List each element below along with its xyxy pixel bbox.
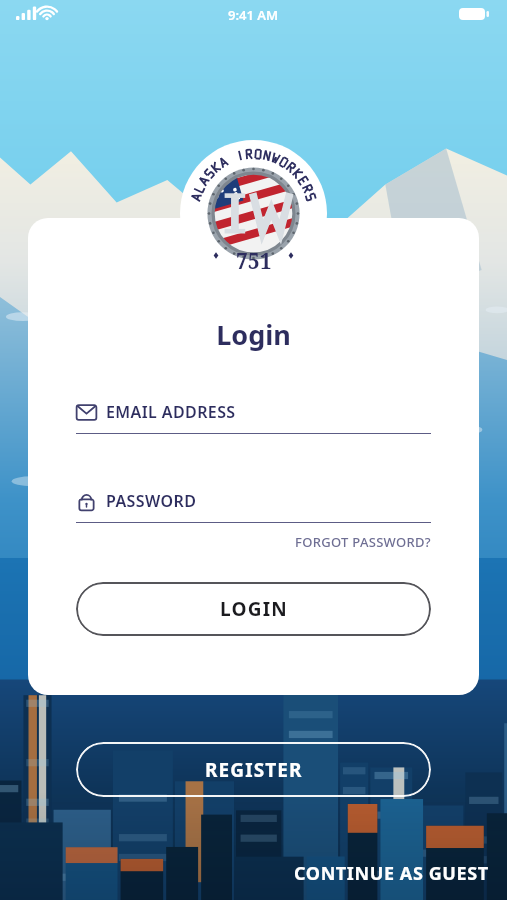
button[interactable]: LOGIN	[76, 582, 431, 636]
staticText: 9:41 AM	[228, 6, 279, 24]
staticText: PASSWORD	[106, 490, 197, 512]
staticText: LOGIN	[220, 596, 288, 622]
button[interactable]: EMAIL ADDRESS	[76, 401, 431, 434]
button[interactable]: FORGOT PASSWORD?	[293, 531, 433, 553]
button[interactable]: REGISTER	[76, 742, 431, 797]
staticText: 751	[236, 247, 272, 276]
staticText: CONTINUE AS GUEST	[294, 861, 489, 886]
button[interactable]: CONTINUE AS GUEST	[290, 857, 493, 890]
staticText: EMAIL ADDRESS	[106, 401, 236, 423]
button[interactable]: PASSWORD	[76, 490, 431, 523]
other: Alaska Ironworkers 751 logo	[180, 140, 327, 287]
staticText: Login	[28, 316, 479, 353]
staticText: FORGOT PASSWORD?	[295, 533, 431, 551]
staticText: REGISTER	[205, 757, 303, 783]
